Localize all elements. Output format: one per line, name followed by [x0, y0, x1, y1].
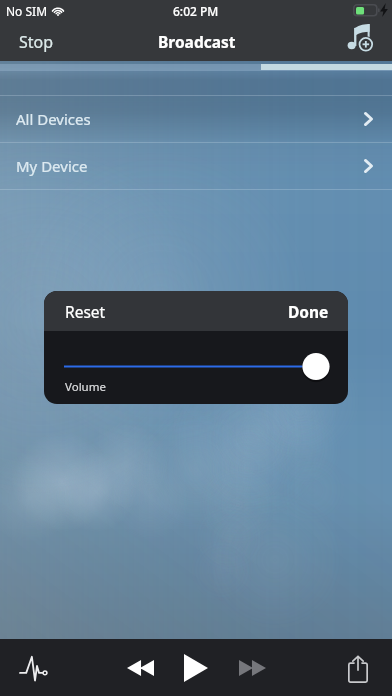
staticText: Broadcast: [158, 31, 236, 52]
staticText: All Devices: [16, 109, 91, 129]
button[interactable]: Done: [274, 294, 348, 329]
button[interactable]: Fast forward: [227, 643, 277, 693]
staticText: 6:02 PM: [173, 3, 219, 19]
button[interactable]: Add music: [337, 19, 381, 58]
staticText: No SIM: [6, 3, 48, 19]
button[interactable]: My Device: [0, 143, 392, 189]
staticText: Volume: [65, 379, 106, 395]
button[interactable]: Waveform: [8, 643, 58, 693]
button[interactable]: Play: [171, 643, 221, 693]
staticText: My Device: [16, 156, 88, 176]
button[interactable]: Share: [333, 643, 383, 693]
button[interactable]: Reset: [44, 294, 120, 329]
button[interactable]: Rewind: [115, 643, 165, 693]
button[interactable]: Stop: [0, 24, 66, 60]
button[interactable]: All Devices: [0, 96, 392, 142]
